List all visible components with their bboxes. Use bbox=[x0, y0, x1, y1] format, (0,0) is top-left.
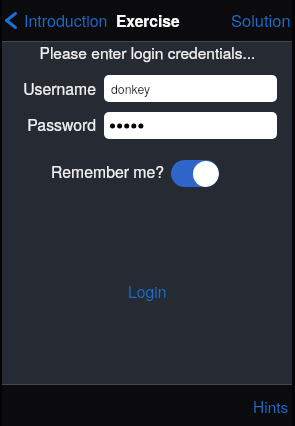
button[interactable]: Hints bbox=[245, 385, 295, 426]
staticText: Username bbox=[0, 77, 96, 100]
button[interactable]: Remember me toggle bbox=[171, 160, 219, 187]
button[interactable] bbox=[104, 112, 277, 139]
staticText: donkey bbox=[111, 80, 151, 98]
button[interactable]: Login bbox=[116, 277, 179, 306]
staticText: Remember me? bbox=[51, 160, 165, 183]
button[interactable]: donkey bbox=[104, 75, 277, 102]
staticText: Login bbox=[128, 280, 167, 303]
staticText: Please enter login credentials... bbox=[0, 41, 295, 63]
staticText: Solution bbox=[231, 8, 291, 32]
button[interactable]: Solution bbox=[223, 0, 295, 40]
staticText: Password bbox=[0, 113, 96, 136]
staticText: Introduction bbox=[24, 9, 108, 32]
button[interactable]: Introduction bbox=[0, 0, 114, 40]
staticText: Hints bbox=[253, 395, 289, 417]
staticText: Exercise bbox=[116, 10, 180, 32]
